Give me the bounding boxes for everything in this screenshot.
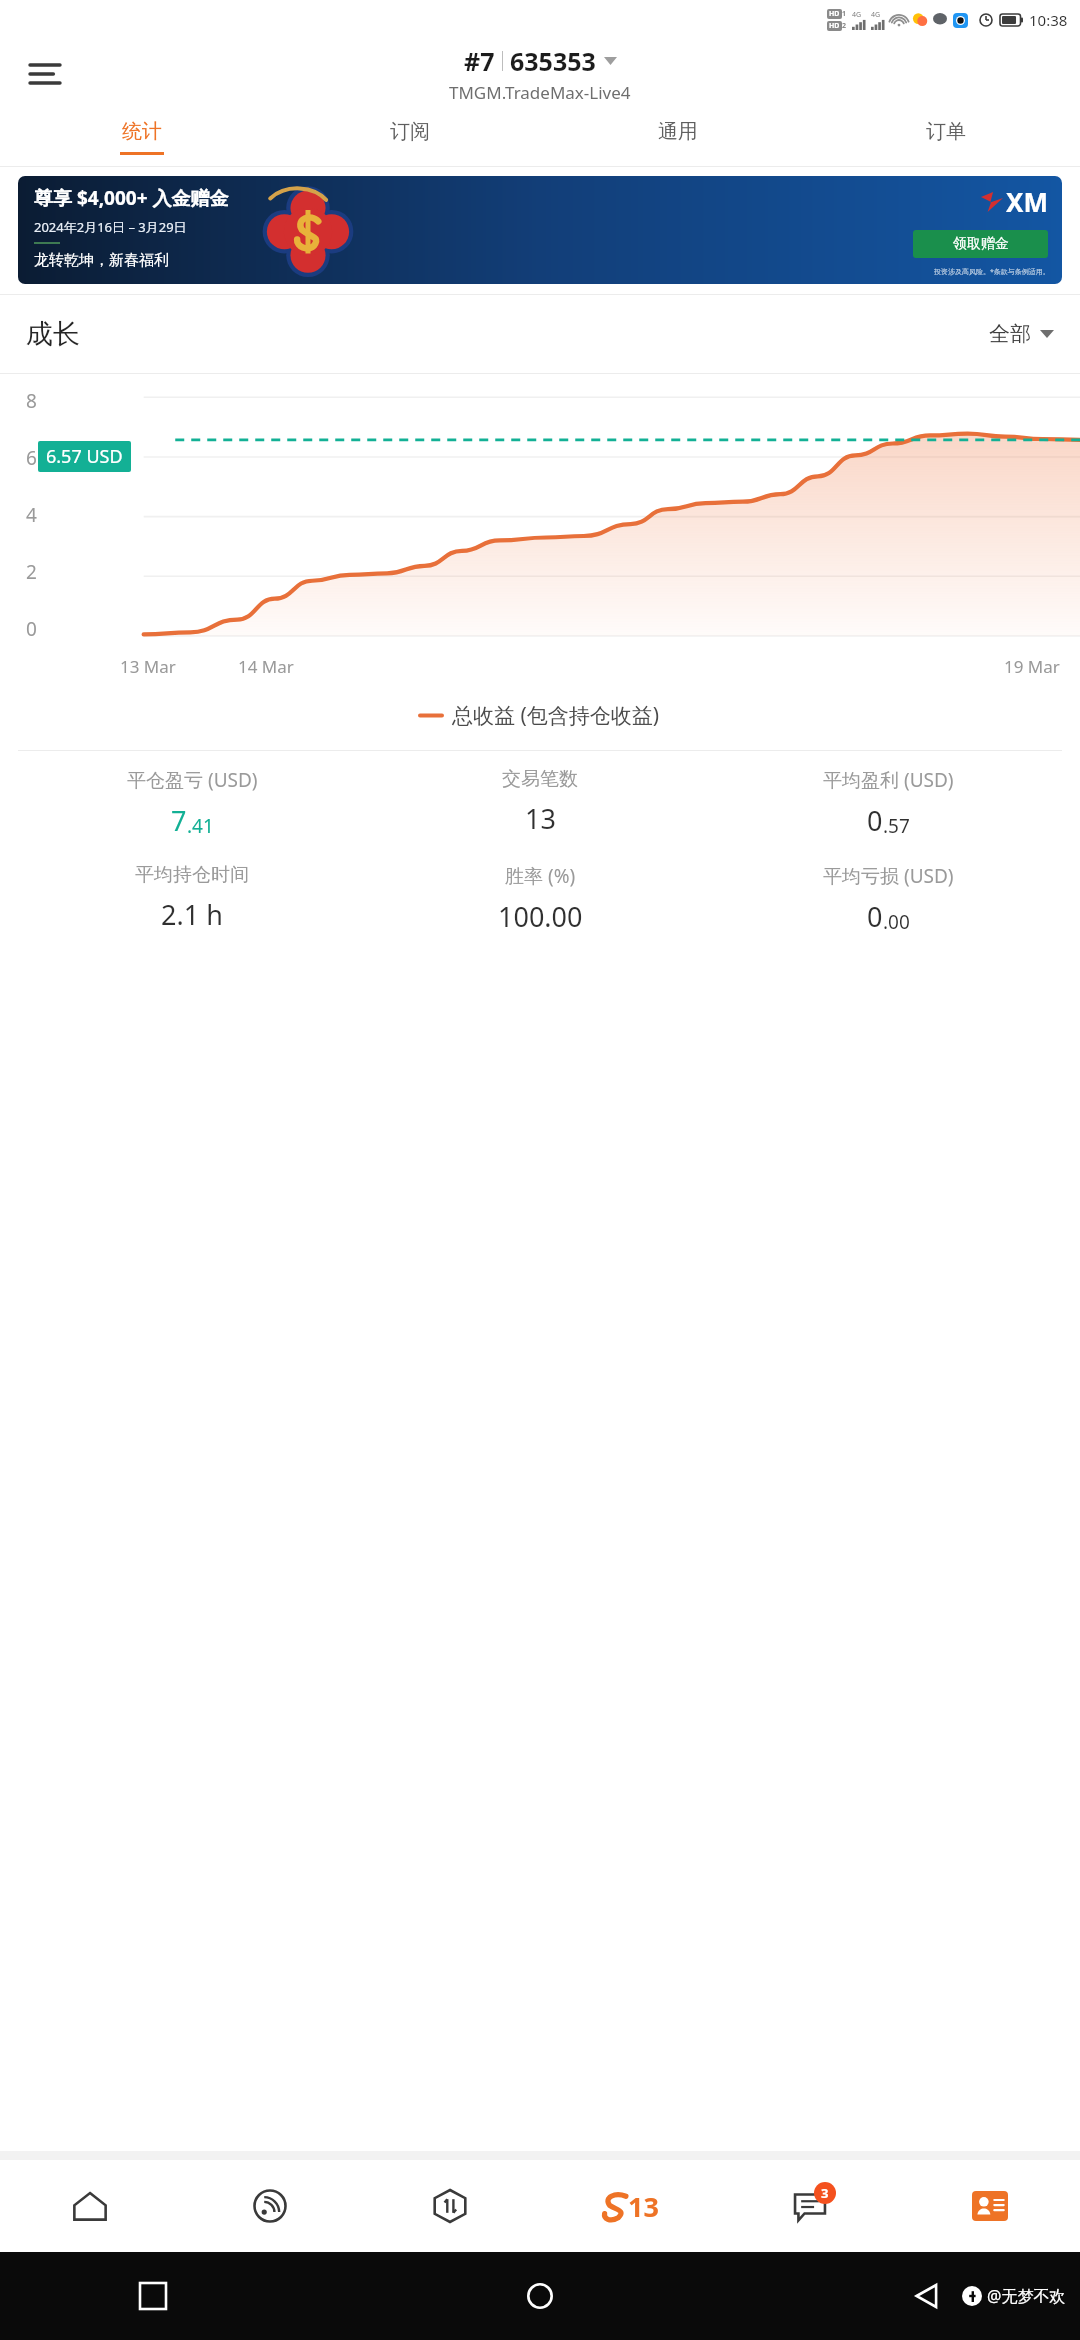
staticText: 全部: [989, 321, 1031, 347]
staticText: 635353: [510, 44, 596, 78]
staticText: 平仓盈亏 (USD): [127, 767, 258, 793]
staticText: 统计: [122, 119, 162, 144]
staticText: 100.00: [498, 898, 583, 935]
staticText: 总收益 (包含持仓收益): [452, 701, 660, 730]
staticText: 0: [867, 898, 883, 935]
staticText: 1: [842, 9, 847, 19]
button[interactable]: 订阅: [276, 108, 544, 166]
staticText: 3: [821, 2184, 829, 2202]
staticText: @无梦不欢: [987, 2285, 1066, 2307]
staticText: 13: [628, 2188, 659, 2225]
button[interactable]: 全部: [989, 321, 1054, 347]
staticText: 2024年2月16日 – 3月29日: [34, 218, 187, 236]
staticText: 0: [867, 802, 883, 839]
staticText: 通用: [658, 119, 698, 144]
staticText: 0: [26, 616, 37, 642]
staticText: 8: [26, 388, 37, 414]
staticText: 13 Mar: [120, 655, 176, 678]
staticText: #7: [464, 44, 495, 78]
button[interactable]: Back: [914, 2283, 940, 2309]
staticText: 订阅: [390, 119, 430, 144]
staticText: 胜率 (%): [505, 863, 576, 889]
staticText: .00: [883, 909, 910, 935]
staticText: HD: [829, 9, 840, 19]
button[interactable]: 领取赠金: [913, 230, 1048, 258]
staticText: 成长: [26, 317, 80, 351]
button[interactable]: Account: [900, 2160, 1080, 2252]
staticText: 2.1 h: [161, 896, 223, 933]
staticText: 龙转乾坤，新春福利: [34, 251, 169, 270]
staticText: 4: [26, 502, 37, 528]
staticText: 交易笔数: [502, 767, 578, 791]
button[interactable]: Home: [527, 2283, 553, 2309]
button[interactable]: 尊享 $4,000+ 入金赠金: [18, 176, 1062, 284]
staticText: 2: [26, 559, 37, 585]
button[interactable]: 13: [540, 2160, 720, 2252]
staticText: 订单: [926, 119, 966, 144]
staticText: HD: [829, 21, 840, 31]
staticText: 19 Mar: [1004, 655, 1060, 678]
staticText: 平均盈利 (USD): [823, 767, 954, 793]
staticText: 领取赠金: [953, 235, 1009, 253]
staticText: 10:38: [1029, 10, 1068, 30]
staticText: .57: [883, 813, 910, 839]
button[interactable]: Home: [0, 2160, 180, 2252]
staticText: 4G: [852, 10, 862, 20]
button[interactable]: 通用: [544, 108, 812, 166]
button[interactable]: #7: [449, 44, 631, 104]
button[interactable]: 订单: [812, 108, 1080, 166]
button[interactable]: Messages: [720, 2160, 900, 2252]
staticText: 尊享 $4,000+ 入金赠金: [34, 185, 229, 211]
staticText: XM: [1006, 184, 1048, 219]
staticText: .41: [187, 813, 214, 839]
staticText: 6.57 USD: [46, 444, 123, 469]
staticText: 7: [171, 802, 187, 839]
staticText: 4G: [871, 10, 881, 20]
staticText: 2: [842, 21, 847, 31]
staticText: 投资涉及高风险。*条款与条例适用。: [934, 267, 1050, 277]
button[interactable]: Recents: [140, 2283, 166, 2309]
button[interactable]: Signals: [180, 2160, 360, 2252]
button[interactable]: Menu: [22, 51, 68, 97]
staticText: TMGM.TradeMax-Live4: [449, 81, 631, 104]
staticText: 平均亏损 (USD): [823, 863, 954, 889]
button[interactable]: Trade: [360, 2160, 540, 2252]
staticText: 6: [26, 445, 37, 471]
button[interactable]: 统计: [8, 108, 276, 166]
staticText: 14 Mar: [238, 655, 294, 678]
staticText: 平均持仓时间: [135, 863, 249, 887]
staticText: 13: [525, 800, 556, 837]
